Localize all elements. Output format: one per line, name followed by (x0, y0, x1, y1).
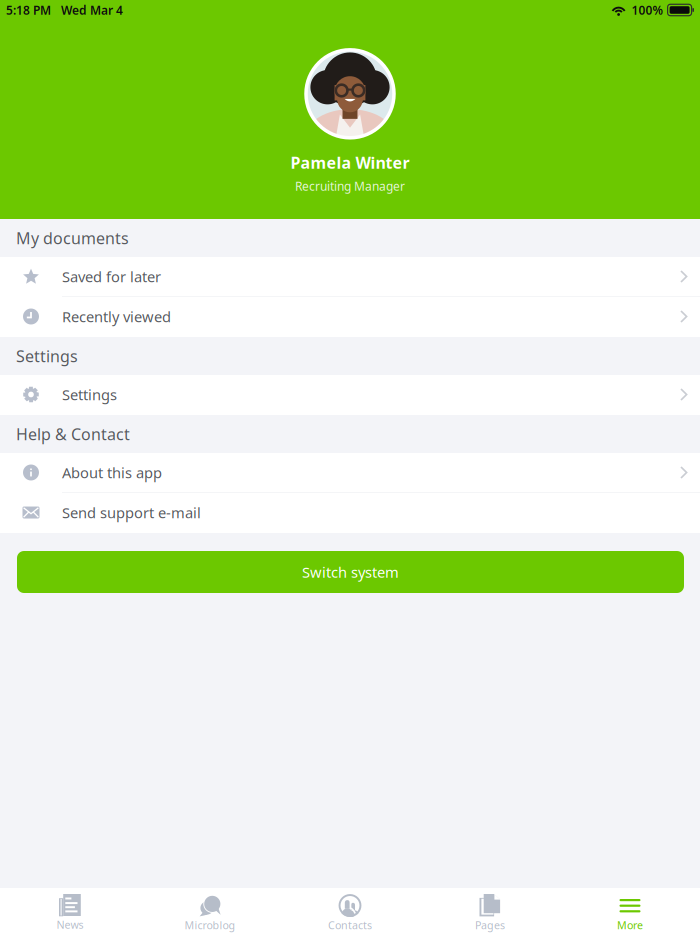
staticText: Saved for later (62, 267, 161, 286)
staticText: Settings (16, 345, 78, 367)
button[interactable]: Microblog (140, 888, 280, 934)
staticText: More (617, 918, 643, 932)
staticText: Recruiting Manager (295, 178, 405, 194)
staticText: Settings (62, 385, 117, 404)
staticText: Contacts (328, 918, 372, 932)
staticText: 100% (632, 2, 664, 18)
button[interactable]: About this app (0, 453, 700, 493)
button[interactable]: News (0, 888, 140, 934)
staticText: Switch system (302, 562, 399, 582)
staticText: My documents (16, 227, 129, 249)
staticText: Send support e-mail (62, 503, 201, 522)
button[interactable]: Saved for later (0, 257, 700, 297)
staticText: Help & Contact (16, 423, 130, 445)
button[interactable]: Send support e-mail (0, 493, 700, 533)
button[interactable]: Contacts (280, 888, 420, 934)
button[interactable]: More (560, 888, 700, 934)
button[interactable]: Recently viewed (0, 297, 700, 337)
staticText: About this app (62, 463, 162, 482)
staticText: Pages (475, 918, 505, 932)
staticText: 5:18 PM (6, 2, 51, 18)
staticText: Pamela Winter (290, 152, 409, 173)
staticText: News (56, 917, 83, 932)
staticText: Microblog (184, 918, 235, 932)
staticText: Recently viewed (62, 307, 171, 326)
button[interactable]: Settings (0, 375, 700, 415)
button[interactable]: Pages (420, 888, 560, 934)
staticText: Wed Mar 4 (61, 2, 123, 18)
button[interactable]: Switch system (17, 551, 684, 593)
